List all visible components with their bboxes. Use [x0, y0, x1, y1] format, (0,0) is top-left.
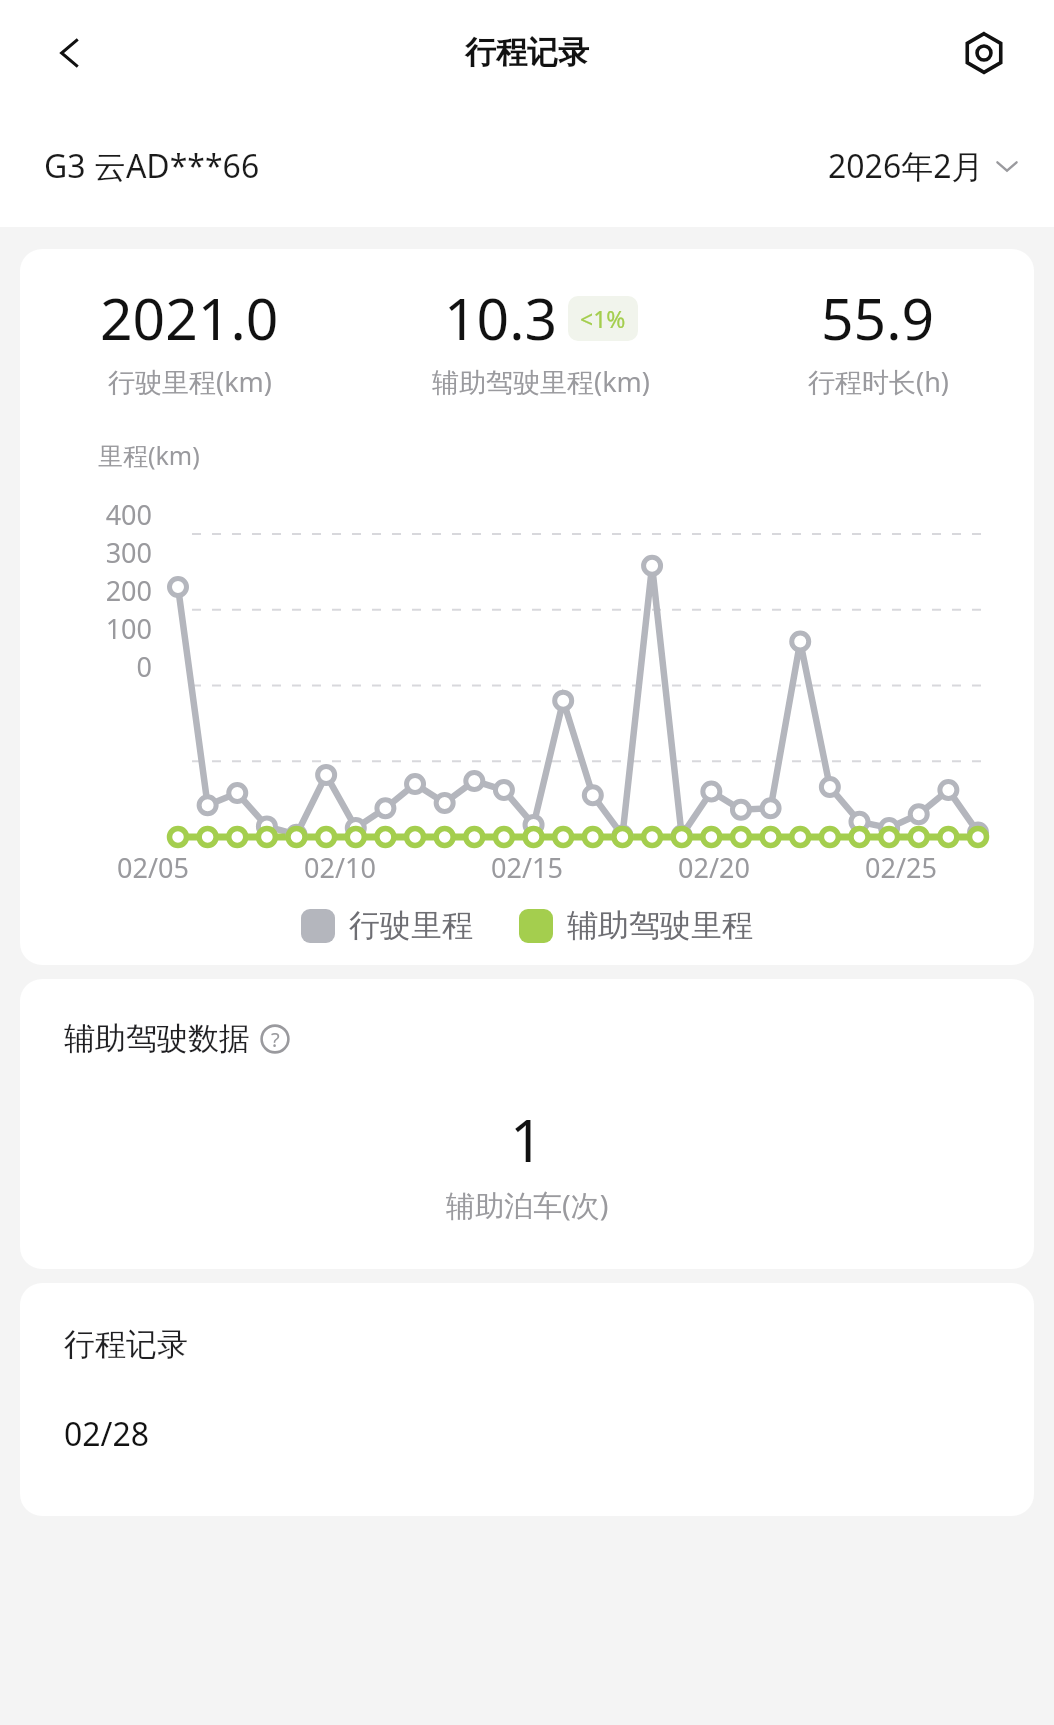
staticText: 300 [20, 534, 152, 571]
staticText: 02/28 [64, 1412, 150, 1456]
staticText: 辅助驾驶里程(km) [432, 363, 650, 400]
staticText: ? [271, 1026, 280, 1053]
button[interactable]: Settings [954, 23, 1014, 83]
staticText: 辅助驾驶数据 [64, 1019, 250, 1058]
staticText: 55.9 [821, 279, 935, 357]
staticText: 里程(km) [98, 438, 200, 472]
staticText: 400 [20, 496, 152, 533]
staticText: 200 [20, 572, 152, 609]
staticText: G3 云AD***66 [44, 144, 260, 188]
button[interactable]: Back [44, 27, 96, 79]
button[interactable]: Help [258, 1022, 292, 1056]
staticText: 行程时长(h) [808, 363, 949, 400]
staticText: 行驶里程(km) [108, 363, 272, 400]
staticText: 行程记录 [465, 33, 589, 72]
staticText: 行程记录 [64, 1325, 188, 1364]
staticText: 02/25 [865, 849, 937, 886]
staticText: 02/10 [304, 849, 376, 886]
button[interactable]: 2026年2月 [828, 144, 1020, 188]
staticText: 0 [20, 648, 152, 685]
button[interactable]: 行驶里程 [301, 906, 473, 945]
staticText: 1 [510, 1100, 544, 1179]
staticText: 100 [20, 610, 152, 647]
staticText: <1% [580, 303, 626, 334]
staticText: 02/15 [491, 849, 563, 886]
staticText: 辅助泊车(次) [446, 1185, 609, 1225]
staticText: 02/05 [117, 849, 189, 886]
staticText: 2021.0 [100, 279, 279, 357]
staticText: 2026年2月 [828, 144, 984, 188]
button[interactable]: 辅助驾驶里程 [519, 906, 753, 945]
staticText: 02/20 [678, 849, 750, 886]
staticText: 10.3 [444, 279, 558, 357]
staticText: 行驶里程 [349, 906, 473, 945]
staticText: 辅助驾驶里程 [567, 906, 753, 945]
